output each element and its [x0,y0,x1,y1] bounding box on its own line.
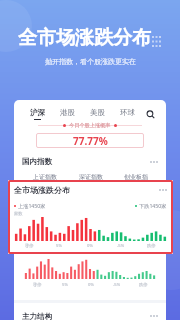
staticText: 全市场涨跌分布 [18,26,151,50]
staticText: 深证指数 [79,173,103,181]
staticText: 涨停 [25,243,34,248]
staticText: 港股 [60,108,75,117]
staticText: 上涨1450家 [18,202,46,209]
button[interactable]: 沪深 [22,108,52,120]
staticText: 5% [56,243,62,249]
staticText: -5% [117,243,125,249]
staticText: 环球 [120,108,135,117]
staticText: 下跌1450家 [139,202,167,209]
staticText: 跌停 [139,282,148,287]
button[interactable]: 港股 [52,108,82,120]
button[interactable]: 全市场涨跌分布 [8,180,173,254]
staticText: 美股 [90,108,105,117]
staticText: 涨停 [33,282,42,287]
staticText: -5% [113,282,121,288]
staticText: 沪深 [30,108,45,117]
staticText: 主力结构 [22,312,52,320]
button[interactable]: 环球 [112,108,142,120]
staticText: 0% [87,243,93,249]
button[interactable]: 美股 [82,108,112,120]
staticText: 家数 [14,211,23,216]
staticText: 5% [62,282,68,288]
button[interactable]: 国内指数 [22,157,158,166]
staticText: 0% [88,282,94,288]
staticText: 创业板指 [124,173,148,181]
staticText: 今日个股上涨概率 [69,122,111,129]
staticText: 跌停 [147,243,156,248]
staticText: 抛开指数，看个股涨跌更实在 [45,57,136,66]
staticText: 77.77% [73,134,108,148]
staticText: 上证指数 [33,173,57,181]
staticText: 国内指数 [22,157,52,166]
button[interactable]: 主力结构 [22,312,158,320]
staticText: 全市场涨跌分布 [14,185,70,195]
button[interactable]: 搜索 [142,107,158,121]
